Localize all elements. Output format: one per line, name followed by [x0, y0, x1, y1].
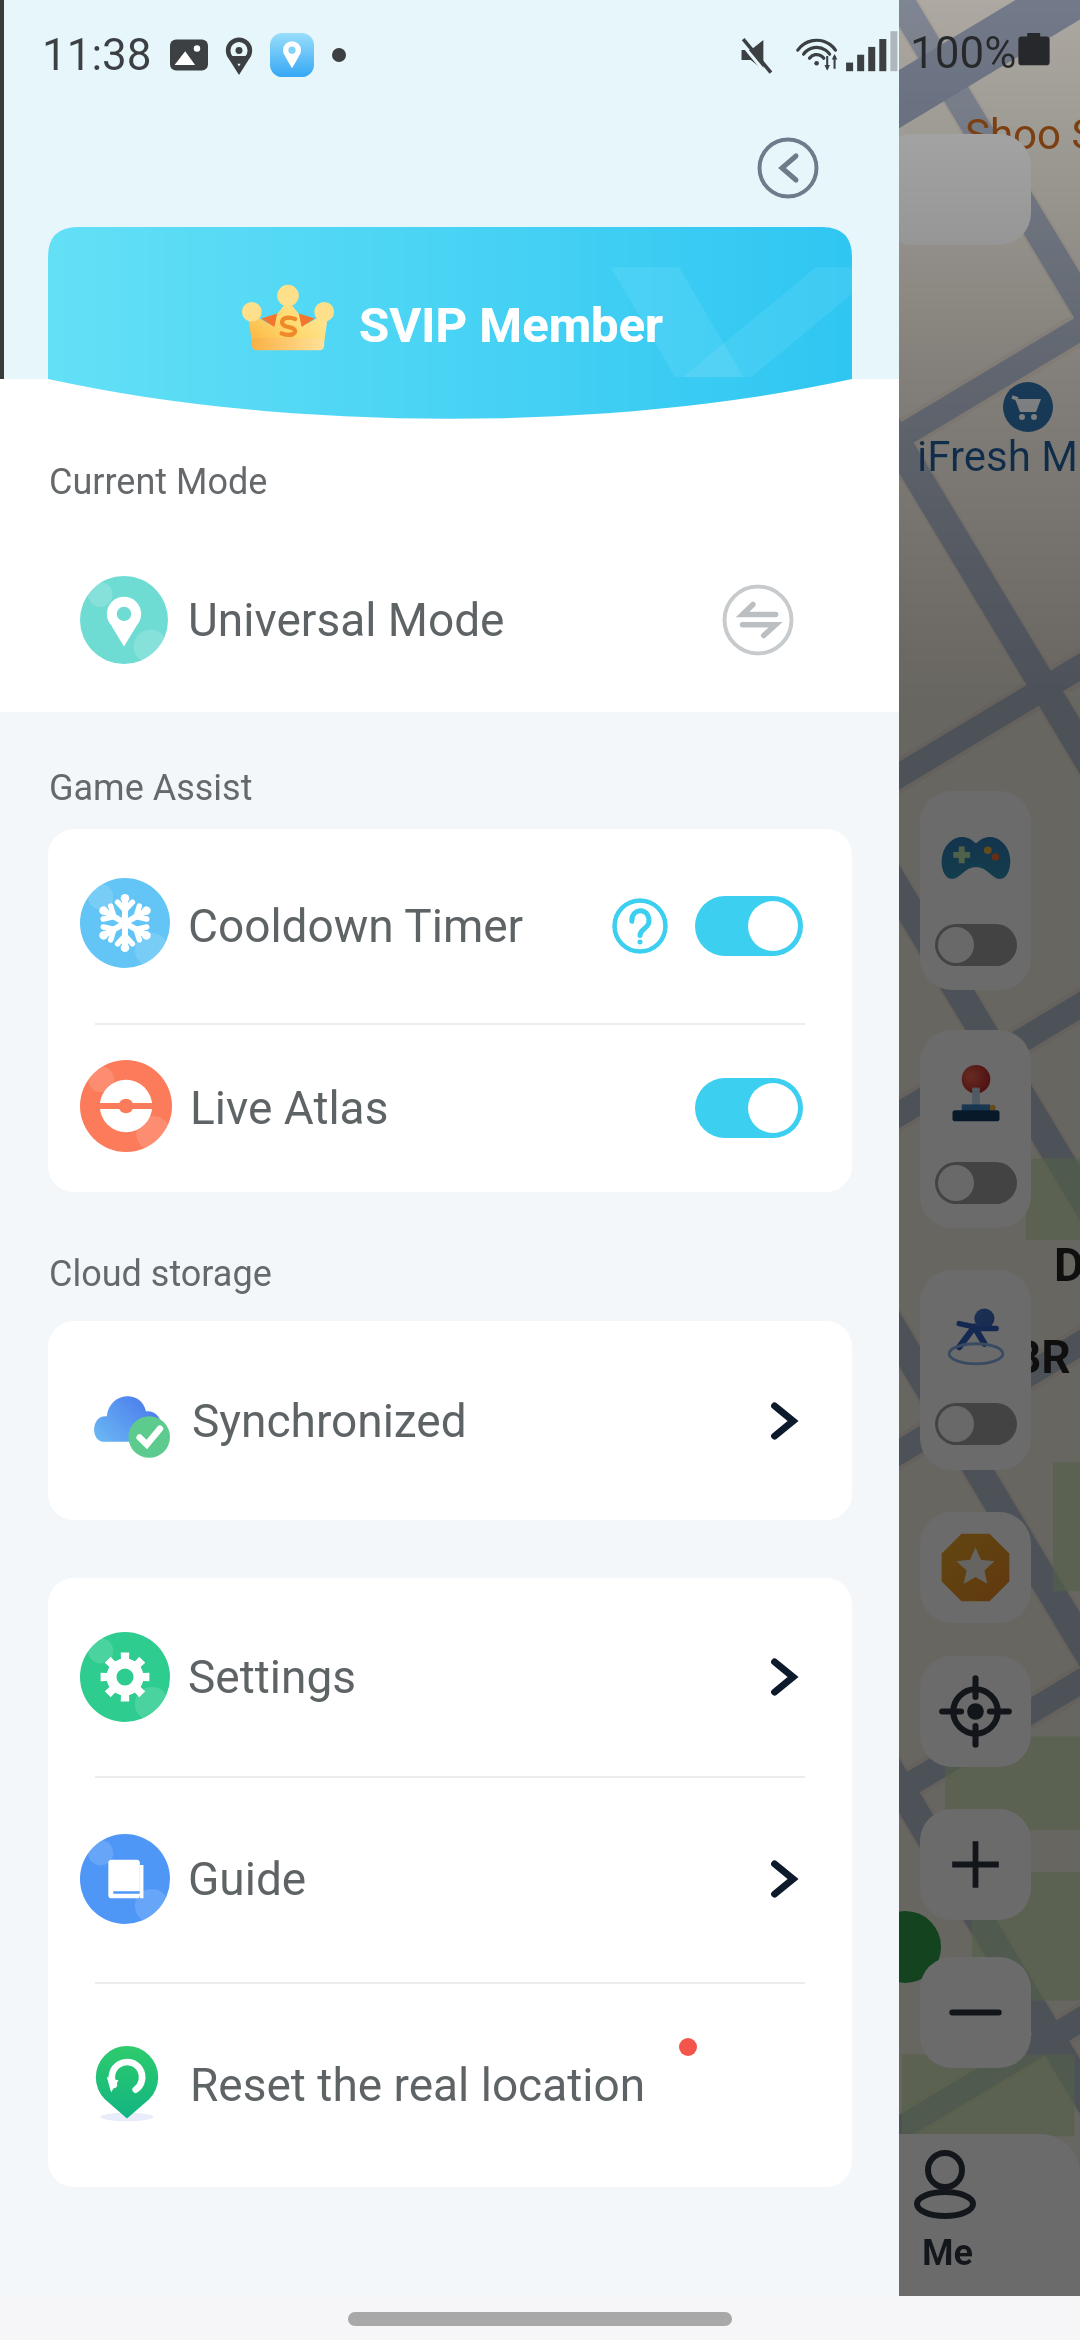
staticText: Cooldown Timer: [188, 899, 524, 953]
staticText: Live Atlas: [190, 1081, 389, 1135]
button[interactable]: Settings: [48, 1578, 852, 1776]
button[interactable]: Map control: [920, 1030, 1031, 1228]
staticText: Me: [922, 2232, 973, 2274]
button[interactable]: Map control: [920, 791, 1031, 990]
staticText: Guide: [188, 1852, 307, 1906]
button[interactable]: Map control: [920, 1809, 1031, 1920]
button[interactable]: Map control: [920, 1512, 1031, 1623]
staticText: Settings: [188, 1650, 356, 1704]
staticText: Reset the real location: [190, 2058, 646, 2112]
button[interactable]: Back: [757, 137, 819, 199]
staticText: iFresh Mar: [917, 432, 1080, 481]
button[interactable]: Map control: [920, 1270, 1031, 1470]
staticText: BR: [1012, 1330, 1071, 1384]
staticText: 11:38: [42, 29, 152, 81]
button[interactable]: Switch mode: [722, 584, 794, 656]
staticText: SVIP Member: [359, 297, 664, 354]
button[interactable]: Me: [899, 2134, 1080, 2296]
button[interactable]: Cooldown Timer: [48, 829, 852, 1023]
staticText: Current Mode: [49, 461, 268, 503]
staticText: Game Assist: [49, 767, 253, 809]
staticText: Universal Mode: [188, 593, 505, 647]
staticText: D: [1054, 1238, 1080, 1292]
button[interactable]: Help: [612, 898, 668, 954]
button[interactable]: Toggle: [695, 1078, 803, 1138]
staticText: Synchronized: [192, 1394, 467, 1448]
staticText: Shoo Sh: [965, 110, 1080, 159]
staticText: Cloud storage: [49, 1253, 272, 1295]
button[interactable]: SVIP Member: [48, 227, 852, 410]
button[interactable]: Toggle: [695, 896, 803, 956]
staticText: 100%: [910, 27, 1017, 79]
button[interactable]: Live Atlas: [48, 1023, 852, 1192]
button[interactable]: Reset the real location: [48, 1982, 852, 2187]
button[interactable]: Guide: [48, 1776, 852, 1982]
button[interactable]: Universal Mode: [48, 536, 852, 704]
button[interactable]: Map control: [920, 1656, 1031, 1767]
button[interactable]: Map control: [920, 1957, 1031, 2068]
button[interactable]: Synchronized: [48, 1321, 852, 1520]
